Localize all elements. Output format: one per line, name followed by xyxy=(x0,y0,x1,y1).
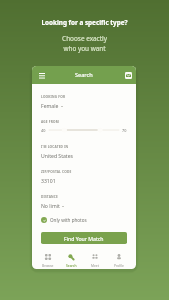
staticText: AGE FROM xyxy=(41,120,59,124)
staticText: Meet xyxy=(91,263,99,267)
staticText: Female xyxy=(41,103,59,110)
staticText: No limit xyxy=(41,203,60,210)
button[interactable]: Browse xyxy=(36,252,59,268)
staticText: 70 xyxy=(122,128,127,133)
staticText: Profile xyxy=(114,263,124,267)
staticText: Search xyxy=(66,263,77,267)
staticText: 40 xyxy=(41,128,46,133)
button[interactable]: Search xyxy=(59,252,83,268)
staticText: 33101 xyxy=(41,178,56,185)
button[interactable]: Meet xyxy=(83,252,107,268)
staticText: Only with photos xyxy=(50,217,87,223)
staticText: Looking for a specific type? xyxy=(41,18,128,27)
button[interactable]: Only with photos xyxy=(41,217,87,223)
staticText: United States xyxy=(41,153,73,160)
staticText: ZIP/POSTAL CODE xyxy=(41,170,72,174)
staticText: DISTANCE xyxy=(41,195,59,199)
button[interactable]: Profile xyxy=(107,252,131,268)
staticText: Browse xyxy=(42,263,54,267)
button[interactable]: Messages xyxy=(125,72,132,79)
staticText: LOOKING FOR xyxy=(41,95,66,99)
staticText: Choose exactly who you want xyxy=(62,34,107,52)
staticText: Find Your Match xyxy=(64,235,104,242)
staticText: Search xyxy=(75,71,93,79)
staticText: I'M LOCATED IN xyxy=(41,145,69,149)
button[interactable]: Menu xyxy=(36,70,47,81)
button[interactable]: Find Your Match xyxy=(41,232,127,244)
